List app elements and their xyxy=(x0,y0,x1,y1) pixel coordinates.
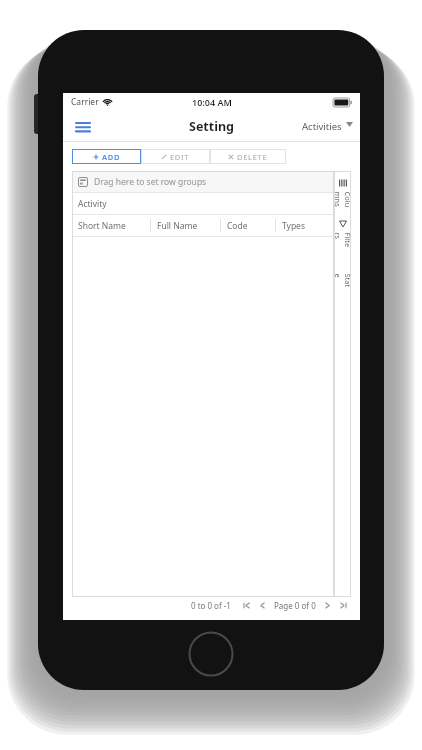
button[interactable]: Home xyxy=(188,631,234,677)
staticText: Code xyxy=(227,220,248,232)
staticText: Activities xyxy=(302,120,342,133)
staticText: Drag here to set row groups xyxy=(94,176,207,188)
button[interactable]: DELETE xyxy=(210,149,286,164)
staticText: DELETE xyxy=(237,152,268,162)
button[interactable]: Code xyxy=(221,215,275,236)
staticText: 10:04 AM xyxy=(192,96,232,108)
button[interactable]: ADD xyxy=(72,149,141,164)
button[interactable]: Previous page xyxy=(258,601,267,610)
staticText: Page 0 of 0 xyxy=(274,600,316,611)
staticText: Activity xyxy=(78,198,107,210)
button[interactable]: Next page xyxy=(323,601,332,610)
staticText: Columns xyxy=(332,191,352,208)
staticText: EDIT xyxy=(170,152,190,162)
button[interactable]: Filters xyxy=(334,220,351,251)
button[interactable]: Columns xyxy=(334,179,351,210)
staticText: Full Name xyxy=(157,220,198,232)
staticText: 0 to 0 of -1 xyxy=(191,600,231,611)
staticText: Short Name xyxy=(78,220,126,232)
button[interactable]: First page xyxy=(242,601,251,610)
button[interactable]: Last page xyxy=(339,601,348,610)
staticText: Types xyxy=(282,220,305,232)
staticText: Setting xyxy=(189,118,234,135)
staticText: Carrier xyxy=(71,96,99,108)
button[interactable]: Activities xyxy=(302,120,353,133)
staticText: Filters xyxy=(332,232,352,249)
button[interactable]: Short Name xyxy=(72,215,150,236)
button[interactable]: Types xyxy=(276,215,330,236)
button[interactable]: Full Name xyxy=(151,215,220,236)
button[interactable]: EDIT xyxy=(141,149,210,164)
staticText: ADD xyxy=(102,152,121,162)
button[interactable]: State xyxy=(334,261,351,292)
staticText: State xyxy=(332,273,352,290)
button[interactable]: Menu xyxy=(72,115,94,137)
